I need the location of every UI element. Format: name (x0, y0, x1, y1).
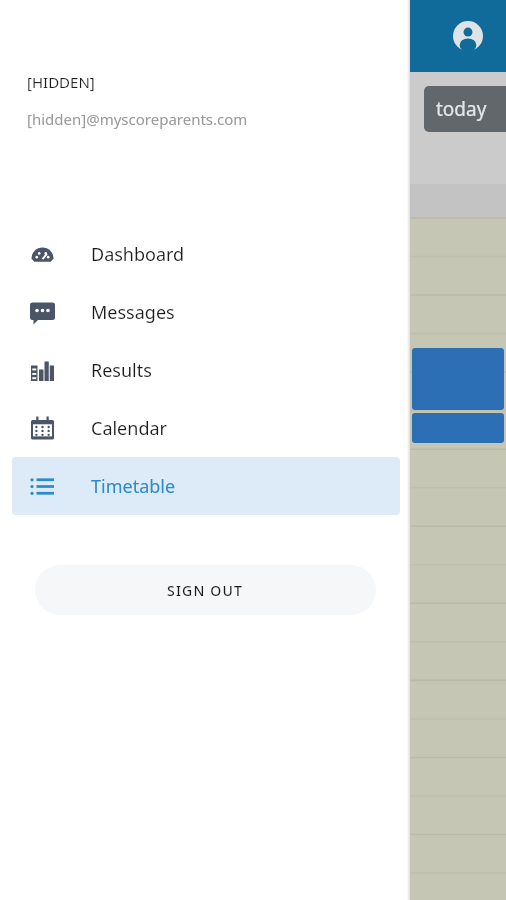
staticText: Results (91, 358, 152, 383)
staticText: Calendar (91, 416, 167, 441)
staticText: Dashboard (91, 242, 185, 267)
button[interactable]: Lesson (412, 348, 504, 410)
staticText: [HIDDEN] (27, 72, 95, 92)
button[interactable]: Dashboard (12, 225, 400, 283)
button[interactable]: Timetable (12, 457, 400, 515)
button[interactable]: Lesson (412, 413, 504, 443)
staticText: [hidden]@myscoreparents.com (27, 109, 248, 129)
button[interactable]: SIGN OUT (35, 565, 376, 615)
button[interactable]: Messages (12, 283, 400, 341)
staticText: Messages (91, 300, 175, 325)
button[interactable]: Account (448, 16, 488, 56)
staticText: today (436, 96, 487, 122)
staticText: SIGN OUT (167, 581, 244, 600)
button[interactable]: Results (12, 341, 400, 399)
button[interactable]: Calendar (12, 399, 400, 457)
button[interactable]: today (424, 86, 506, 132)
staticText: Timetable (91, 474, 176, 499)
